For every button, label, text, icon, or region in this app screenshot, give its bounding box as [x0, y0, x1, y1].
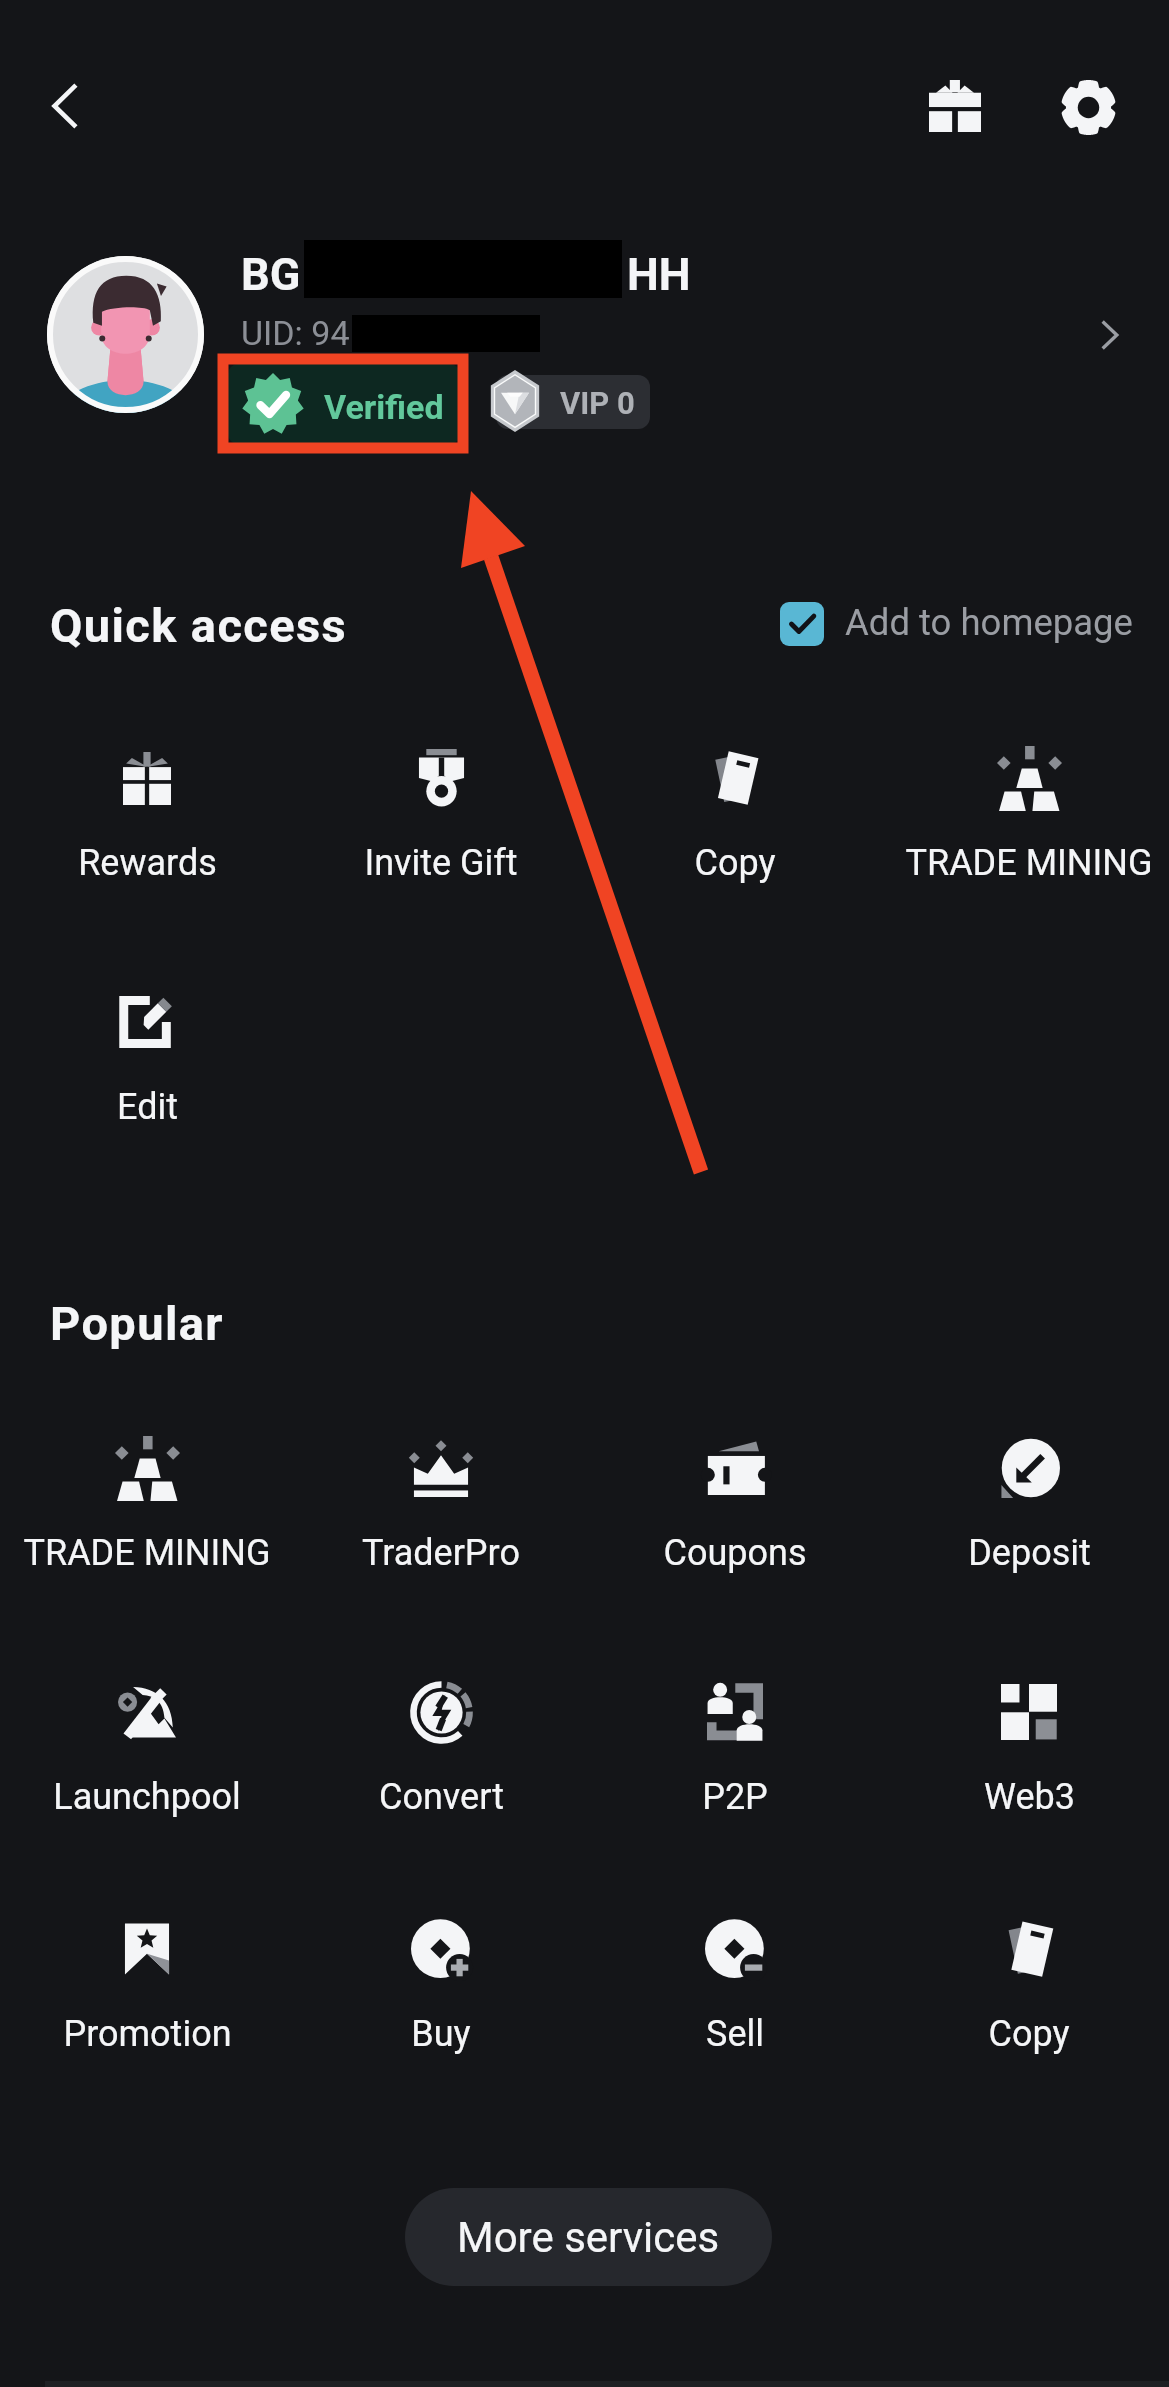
- button[interactable]: More services: [405, 2188, 772, 2286]
- staticText: Rewards: [78, 842, 217, 884]
- staticText: Buy: [411, 2013, 471, 2055]
- button[interactable]: Rewards: [0, 740, 294, 884]
- staticText: BG: [241, 248, 301, 301]
- button[interactable]: Convert: [294, 1674, 588, 1818]
- button[interactable]: TRADE MINING: [0, 1430, 294, 1574]
- staticText: Web3: [984, 1776, 1075, 1818]
- button[interactable]: Profile details: [1080, 305, 1140, 365]
- staticText: Quick access: [50, 598, 348, 653]
- button[interactable]: [0, 236, 1169, 436]
- button[interactable]: Settings: [1047, 66, 1129, 148]
- button[interactable]: Copy: [882, 1911, 1169, 2055]
- staticText: VIP 0: [560, 385, 635, 421]
- button[interactable]: TraderPro: [294, 1430, 588, 1574]
- button[interactable]: Launchpool: [0, 1674, 294, 1818]
- button[interactable]: Promotion: [0, 1911, 294, 2055]
- staticText: Coupons: [663, 1532, 807, 1574]
- button[interactable]: TRADE MINING: [882, 740, 1169, 884]
- staticText: Edit: [117, 1086, 178, 1128]
- staticText: Convert: [379, 1776, 504, 1818]
- button[interactable]: Copy: [588, 740, 882, 884]
- button[interactable]: VIP 0: [496, 375, 650, 429]
- button[interactable]: Add to homepage: [780, 600, 1133, 644]
- staticText: Verified: [324, 387, 444, 427]
- staticText: UID: 94: [241, 313, 350, 353]
- button[interactable]: Back: [26, 66, 106, 146]
- button[interactable]: Invite Gift: [294, 740, 588, 884]
- staticText: P2P: [702, 1776, 768, 1818]
- staticText: Copy: [694, 842, 776, 884]
- staticText: HH: [627, 248, 691, 301]
- button[interactable]: Sell: [588, 1911, 882, 2055]
- staticText: Sell: [706, 2013, 764, 2055]
- staticText: TRADE MINING: [905, 842, 1153, 884]
- button[interactable]: Deposit: [882, 1430, 1169, 1574]
- staticText: Invite Gift: [364, 842, 518, 884]
- staticText: TraderPro: [362, 1532, 520, 1574]
- staticText: TRADE MINING: [23, 1532, 271, 1574]
- staticText: Promotion: [63, 2013, 232, 2055]
- staticText: Add to homepage: [845, 601, 1133, 644]
- button[interactable]: Web3: [882, 1674, 1169, 1818]
- staticText: Popular: [50, 1296, 224, 1351]
- staticText: Copy: [988, 2013, 1070, 2055]
- button[interactable]: Buy: [294, 1911, 588, 2055]
- button[interactable]: P2P: [588, 1674, 882, 1818]
- staticText: Deposit: [968, 1532, 1091, 1574]
- button[interactable]: Edit: [0, 984, 294, 1128]
- button[interactable]: Verified: [228, 364, 460, 444]
- button[interactable]: Gifts: [915, 66, 995, 146]
- staticText: Launchpool: [53, 1776, 241, 1818]
- button[interactable]: Coupons: [588, 1430, 882, 1574]
- staticText: More services: [457, 2213, 720, 2262]
